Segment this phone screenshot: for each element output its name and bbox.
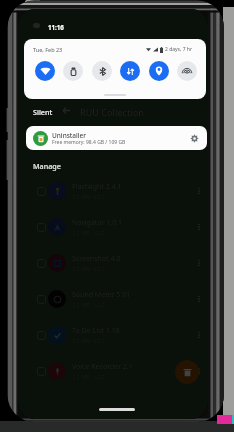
button[interactable]: Sound Meter 5.01 xyxy=(18,283,208,315)
staticText: Tue, Feb 23 xyxy=(33,46,63,53)
staticText: Silent xyxy=(33,107,53,117)
button[interactable]: Uninstaller xyxy=(26,126,207,150)
button[interactable]: Quick setting xyxy=(63,61,83,81)
staticText: Flashlight 2.4.1 xyxy=(72,182,122,192)
button[interactable]: Quick setting xyxy=(120,61,140,81)
staticText: RUU Collection xyxy=(80,106,144,118)
button[interactable]: Notification settings xyxy=(188,132,200,144)
button[interactable]: Voice Recorder 2.1 xyxy=(18,355,208,387)
staticText: Voice Recorder 2.1 xyxy=(72,362,133,372)
staticText: Free memory: 98.4 GB / 109 GB xyxy=(52,139,126,146)
staticText: Manage xyxy=(33,161,61,171)
button[interactable]: Back xyxy=(60,104,73,117)
button[interactable]: Quick setting xyxy=(92,61,112,81)
button[interactable]: Quick setting xyxy=(35,61,55,81)
button[interactable]: Flashlight 2.4.1 xyxy=(18,175,208,207)
staticText: Sound Meter 5.01 xyxy=(72,290,131,300)
staticText: Navigator 1.0.1 xyxy=(72,218,123,228)
button[interactable]: To Do List 1.18 xyxy=(18,319,208,351)
button[interactable]: Quick setting xyxy=(177,61,197,81)
staticText: 11:16 xyxy=(48,23,64,31)
staticText: To Do List 1.18 xyxy=(72,326,120,336)
staticText: Uninstaller xyxy=(52,131,87,140)
button[interactable]: Uninstall selected apps xyxy=(175,360,199,384)
button[interactable]: Manage xyxy=(30,159,64,173)
staticText: 2 days, 7 hr xyxy=(165,46,192,53)
staticText: Screenshot 4.0 xyxy=(72,254,121,264)
button[interactable]: More options xyxy=(190,358,208,384)
button[interactable]: Navigator 1.0.1 xyxy=(18,211,208,243)
button[interactable]: Quick setting xyxy=(149,61,169,81)
